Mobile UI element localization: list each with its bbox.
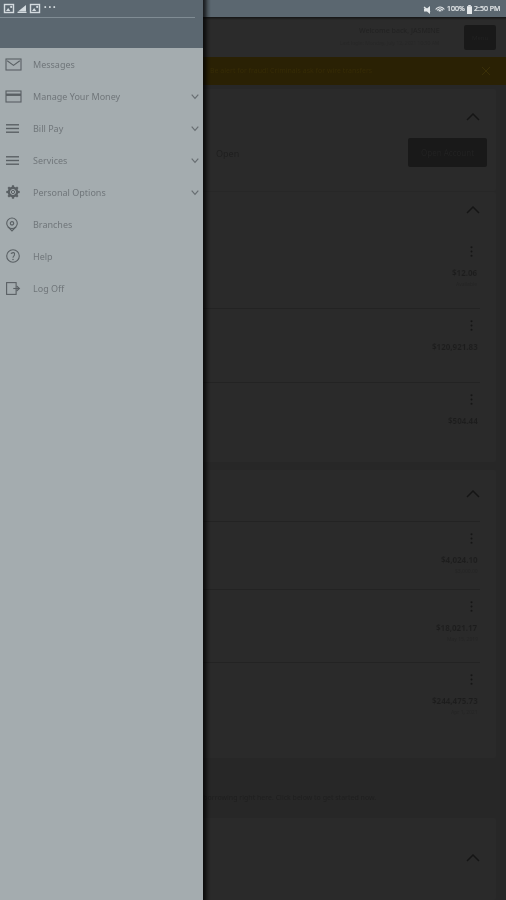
button[interactable]: Collapse section [460,847,486,869]
button[interactable]: Messages [0,48,203,80]
button[interactable]: Manage Your Money [0,80,203,112]
button[interactable]: More options [10,235,496,308]
staticText: Help [33,250,53,262]
button[interactable]: Collapse section [460,199,486,221]
button[interactable]: Help [0,240,203,272]
staticText: Branches [33,218,73,230]
staticText: Manage Your Money [33,90,121,102]
staticText: $4,024.10 [441,554,478,565]
button[interactable]: Dismiss alert [481,66,491,76]
staticText: 100% [447,4,465,14]
button[interactable]: More options [10,522,496,595]
button[interactable]: Collapse section [460,106,486,128]
staticText: • • • [44,3,56,13]
staticText: $12.06 [452,267,478,278]
staticText: $120,921.83 [432,341,478,352]
button[interactable]: More options [10,309,496,382]
button[interactable]: More options [10,590,496,663]
staticText: Manage all of your borrowing right here.… [140,793,500,805]
staticText: $504.44 [448,415,478,426]
staticText: Services [33,154,68,166]
button[interactable]: Collapse section [460,483,486,505]
staticText: $244,475.73 [432,695,478,706]
staticText: $18,021.17 [436,622,478,633]
button[interactable]: Branches [0,208,203,240]
button[interactable]: Personal Options [0,176,203,208]
staticText: Messages [33,58,75,70]
staticText: 2:50 PM [474,4,501,14]
button[interactable]: Services [0,144,203,176]
button[interactable]: More options [10,383,496,456]
staticText: Personal Options [33,186,106,198]
staticText: Bill Pay [33,122,64,134]
staticText: Log Off [33,282,65,294]
button[interactable]: More options [10,663,496,736]
button[interactable]: Bill Pay [0,112,203,144]
staticText: Open [16,112,196,126]
button[interactable]: Log Off [0,272,203,304]
